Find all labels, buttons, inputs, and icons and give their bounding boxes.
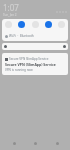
staticText: Secure VPN SlimApp Service xyxy=(9,57,49,61)
button[interactable]: Quick setting toggle xyxy=(58,21,65,28)
staticText: Wi-Fi · Bluetooth xyxy=(9,34,34,38)
staticText: 1:07 xyxy=(3,2,19,13)
button[interactable]: Nav xyxy=(49,136,65,150)
button[interactable]: Quick setting toggle xyxy=(32,21,39,28)
button[interactable]: Nav xyxy=(27,136,43,150)
button[interactable]: Secure VPN SlimApp Service xyxy=(2,53,68,75)
staticText: Secure VPN (SlimApp) Service xyxy=(5,62,56,67)
button[interactable]: Quick setting toggle xyxy=(5,21,12,28)
staticText: Tue, Jan 2 xyxy=(3,13,17,17)
button[interactable] xyxy=(2,43,68,50)
button[interactable]: Quick setting toggle xyxy=(45,21,52,28)
button[interactable]: Quick setting toggle xyxy=(18,21,25,28)
button[interactable]: Nav xyxy=(6,136,22,150)
staticText: VPN is running now xyxy=(5,68,33,72)
